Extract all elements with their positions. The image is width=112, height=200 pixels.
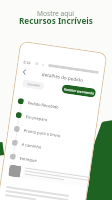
button[interactable]: Back xyxy=(19,67,30,77)
button[interactable]: Pedido Recebido xyxy=(17,94,88,118)
staticText: 8:34 xyxy=(23,59,32,65)
button[interactable]: Pronto para o Envio xyxy=(13,122,84,145)
staticText: A caminho xyxy=(21,142,42,150)
staticText: Rastrear encomenda xyxy=(64,87,95,96)
button[interactable]: Em preparo xyxy=(15,108,86,132)
staticText: Cancelar xyxy=(27,82,40,88)
staticText: Entregue xyxy=(19,156,38,163)
button[interactable]: A caminho xyxy=(11,135,82,159)
button[interactable] xyxy=(8,164,90,188)
staticText: Pronto para o Envio xyxy=(23,128,61,138)
button[interactable]: Entregue xyxy=(9,149,80,173)
staticText: Recursos Incríveis xyxy=(19,15,93,26)
button[interactable]: Cancelar xyxy=(22,79,45,90)
staticText: Em preparo xyxy=(25,114,48,122)
staticText: Mostre aqui xyxy=(37,9,75,18)
staticText: Pedido Recebido xyxy=(27,100,60,110)
staticText: detalhes do pedido xyxy=(41,71,84,83)
button[interactable]: Rastrear encomenda xyxy=(61,84,96,98)
